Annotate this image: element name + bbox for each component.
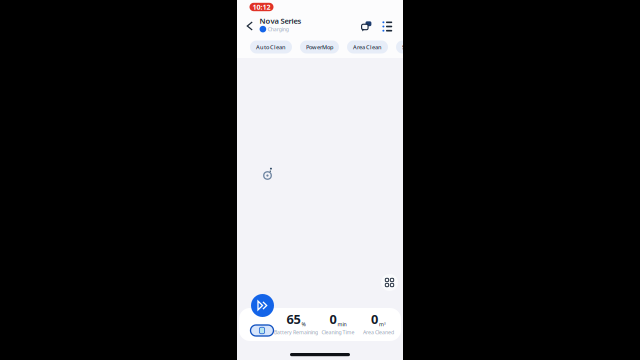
button[interactable]: Area Clean [347,40,388,53]
button[interactable]: Activity [381,19,394,33]
staticText: 0 [371,310,378,328]
staticText: Battery Remaining [274,329,318,336]
staticText: Area Clean [353,43,382,51]
button[interactable]: PowerMop [300,40,339,53]
staticText: PowerMop [306,43,333,51]
staticText: Auto Clean [256,43,286,51]
staticText: m² [379,321,386,328]
staticText: Charging [268,26,289,33]
button[interactable]: Spot Clean [396,40,436,53]
staticText: Cleaning Time [321,329,354,336]
button[interactable]: Start cleaning [251,294,274,317]
staticText: Spot Clean [402,43,430,51]
staticText: min [337,321,346,328]
button[interactable]: Return to dock [250,325,273,336]
staticText: 0 [330,310,337,328]
button[interactable]: Messages [359,19,373,33]
staticText: 10:12 [252,2,270,12]
button[interactable]: Back [243,17,256,35]
staticText: Nova Series [259,16,301,26]
staticText: % [301,321,305,328]
button[interactable]: Rooms [381,274,398,291]
button[interactable]: Auto Clean [250,40,292,53]
staticText: 65 [287,310,301,328]
staticText: Area Cleaned [363,329,394,336]
